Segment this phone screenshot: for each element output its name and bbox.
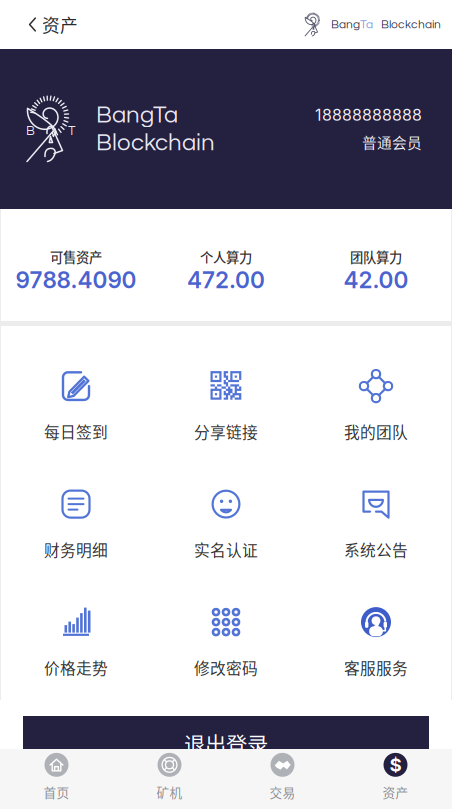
staticText: Bang <box>331 18 360 31</box>
staticText: Blockchain <box>381 18 441 31</box>
button[interactable]: 交易 <box>226 749 339 809</box>
button[interactable]: 实名认证 <box>151 464 301 582</box>
staticText: 首页 <box>43 783 69 801</box>
staticText: 普通会员 <box>362 132 422 153</box>
staticText: 矿机 <box>156 783 182 801</box>
button[interactable]: 修改密码 <box>151 582 301 700</box>
staticText: 退出登录 <box>184 728 268 759</box>
staticText: BangTa <box>96 103 178 127</box>
button[interactable]: 财务明细 <box>1 464 151 582</box>
button[interactable]: 分享链接 <box>151 346 301 464</box>
staticText: 实名认证 <box>194 538 258 561</box>
staticText: 472.00 <box>187 266 265 294</box>
button[interactable]: 首页 <box>0 749 113 809</box>
staticText: 交易 <box>269 783 295 801</box>
staticText: 价格走势 <box>44 656 108 679</box>
staticText: 可售资产 <box>50 247 102 266</box>
staticText: 9788.4090 <box>15 266 136 294</box>
button[interactable]: 价格走势 <box>1 582 151 700</box>
staticText: Blockchain <box>96 130 215 155</box>
staticText: 资产 <box>382 783 408 801</box>
staticText: $ <box>389 753 401 776</box>
button[interactable]: $ <box>339 749 452 809</box>
staticText: T <box>68 124 76 138</box>
staticText: 客服服务 <box>344 656 408 679</box>
staticText: 42.00 <box>343 266 408 294</box>
button[interactable]: 我的团队 <box>301 346 451 464</box>
staticText: 系统公告 <box>344 538 408 561</box>
staticText: B <box>26 124 35 138</box>
button[interactable]: 每日签到 <box>1 346 151 464</box>
staticText: 个人算力 <box>200 247 252 266</box>
staticText: 分享链接 <box>194 420 258 443</box>
staticText: 财务明细 <box>44 538 108 561</box>
button[interactable]: 客服服务 <box>301 582 451 700</box>
button[interactable]: 资产 <box>0 0 94 49</box>
staticText: 修改密码 <box>194 656 258 679</box>
staticText: 每日签到 <box>44 420 108 443</box>
staticText: 18888888888 <box>315 105 422 125</box>
button[interactable]: 退出登录 <box>23 716 429 749</box>
staticText: 资产 <box>42 12 78 37</box>
button[interactable]: 矿机 <box>113 749 226 809</box>
button[interactable]: 系统公告 <box>301 464 451 582</box>
staticText: Ta <box>360 18 373 31</box>
staticText: 团队算力 <box>350 247 402 266</box>
staticText: 我的团队 <box>344 420 408 443</box>
